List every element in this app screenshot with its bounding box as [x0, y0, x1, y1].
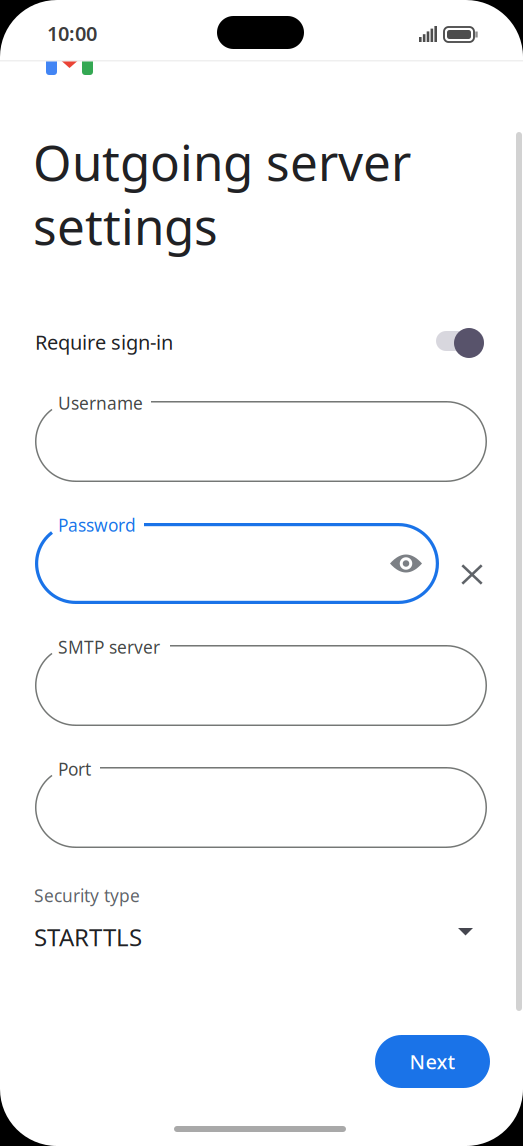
staticText: Security type — [34, 884, 140, 907]
staticText: Require sign-in — [35, 329, 173, 355]
button[interactable]: Require sign-in — [35, 331, 215, 353]
button[interactable]: Next — [375, 1035, 490, 1088]
staticText: Password — [58, 513, 136, 536]
button[interactable]: Require sign-in — [436, 328, 484, 358]
staticText: STARTTLS — [34, 921, 142, 953]
button[interactable]: Clear password — [461, 564, 483, 585]
staticText: Username — [58, 391, 143, 414]
staticText: Next — [409, 1048, 455, 1075]
staticText: 10:00 — [47, 20, 97, 47]
staticText: settings — [33, 193, 218, 258]
staticText: SMTP server — [58, 635, 160, 658]
staticText: Port — [58, 757, 91, 780]
staticText: Outgoing server — [33, 129, 411, 194]
button[interactable]: STARTTLS — [34, 921, 486, 947]
